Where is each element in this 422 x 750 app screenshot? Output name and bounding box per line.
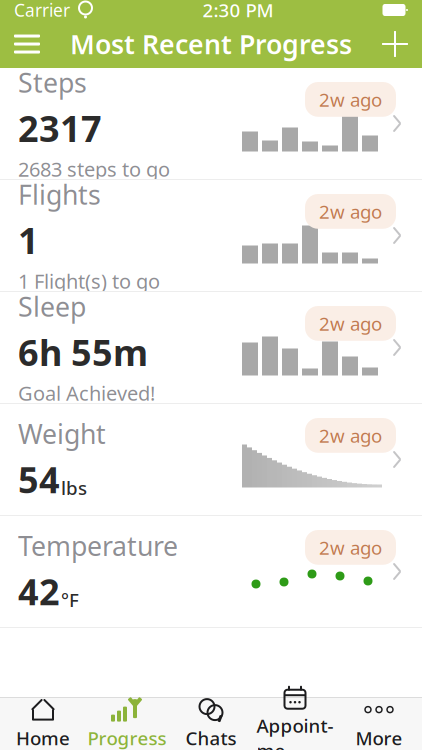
staticText: Temperature: [18, 528, 178, 563]
staticText: 1 Flight(s) to go: [18, 268, 160, 294]
button[interactable]: Appointme…: [253, 698, 337, 750]
button[interactable]: Chats: [169, 698, 253, 750]
staticText: 42: [18, 567, 60, 615]
staticText: Sleep: [18, 289, 86, 324]
staticText: Appointme…: [256, 713, 333, 750]
staticText: lbs: [61, 475, 87, 500]
staticText: 2:30 PM: [202, 0, 273, 22]
staticText: °F: [61, 587, 79, 612]
staticText: 2317: [18, 104, 102, 152]
button[interactable]: Home: [1, 698, 85, 750]
button[interactable]: Weight: [0, 404, 422, 516]
staticText: Progress: [87, 726, 166, 750]
staticText: Chats: [185, 726, 236, 750]
staticText: Goal Achieved!: [18, 380, 155, 406]
staticText: Most Recent Progress: [70, 26, 352, 62]
staticText: 1: [18, 216, 39, 264]
staticText: Flights: [18, 177, 101, 212]
button[interactable]: Menu: [0, 20, 54, 68]
staticText: 54: [18, 455, 60, 503]
button[interactable]: Flights: [0, 180, 422, 292]
staticText: 2w ago: [319, 311, 382, 336]
staticText: Home: [16, 726, 70, 750]
staticText: 2w ago: [319, 423, 382, 448]
button[interactable]: Progress: [85, 698, 169, 750]
staticText: Weight: [18, 416, 106, 451]
staticText: 2w ago: [319, 87, 382, 112]
staticText: 2w ago: [319, 535, 382, 560]
staticText: Steps: [18, 65, 87, 100]
staticText: 2683 steps to go: [18, 156, 170, 182]
button[interactable]: Add: [368, 20, 422, 68]
staticText: Carrier: [14, 0, 70, 21]
button[interactable]: Steps: [0, 68, 422, 180]
staticText: More: [355, 726, 402, 750]
button[interactable]: More: [337, 698, 421, 750]
button[interactable]: Temperature: [0, 516, 422, 628]
button[interactable]: Sleep: [0, 292, 422, 404]
staticText: 2w ago: [319, 199, 382, 224]
staticText: 6h 55m: [18, 328, 148, 376]
